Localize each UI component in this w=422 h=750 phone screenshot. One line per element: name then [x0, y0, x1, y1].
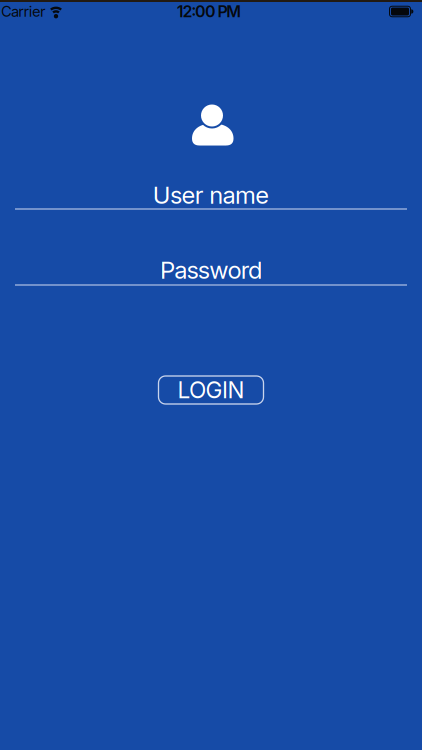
button[interactable]: User name: [0, 167, 422, 223]
button[interactable]: LOGIN: [158, 376, 263, 404]
staticText: Carrier: [1, 3, 46, 20]
button[interactable]: Password: [0, 242, 422, 298]
staticText: LOGIN: [177, 377, 244, 403]
staticText: User name: [153, 181, 269, 209]
staticText: Password: [160, 256, 262, 284]
staticText: 12:00 PM: [177, 2, 241, 21]
